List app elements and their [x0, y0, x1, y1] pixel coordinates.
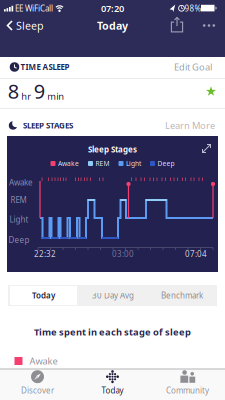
- button[interactable]: Sleep: [4, 17, 46, 33]
- button[interactable]: Share: [169, 16, 185, 34]
- staticText: Awake: [58, 159, 79, 168]
- staticText: Deep: [8, 235, 29, 245]
- button[interactable]: Today: [77, 368, 147, 398]
- staticText: 9: [34, 78, 45, 104]
- staticText: 07:04: [185, 249, 207, 259]
- staticText: Edit Goal: [174, 61, 212, 73]
- staticText: Awake: [29, 355, 57, 367]
- staticText: 8: [8, 78, 19, 104]
- staticText: Benchmark: [161, 290, 203, 301]
- staticText: Community: [166, 385, 209, 396]
- staticText: Light: [126, 159, 141, 168]
- staticText: REM: [10, 195, 26, 205]
- staticText: EE WiFiCall: [15, 3, 53, 14]
- staticText: 98%: [184, 3, 201, 14]
- staticText: REM: [95, 159, 109, 168]
- staticText: Sleep Stages: [88, 144, 137, 155]
- staticText: Light: [9, 214, 28, 225]
- staticText: Today: [101, 385, 123, 396]
- staticText: 03:00: [112, 249, 134, 259]
- staticText: 07:20: [101, 2, 124, 14]
- button[interactable]: Today: [10, 286, 77, 305]
- button[interactable]: Community: [152, 368, 222, 398]
- staticText: Discover: [21, 385, 54, 396]
- button[interactable]: Learn More: [165, 117, 215, 133]
- staticText: TIME ASLEEP: [20, 62, 69, 72]
- staticText: Today: [97, 18, 128, 33]
- staticText: Time spent in each stage of sleep: [34, 326, 191, 338]
- button[interactable]: More options: [200, 18, 218, 32]
- staticText: 30 Day Avg: [92, 290, 134, 301]
- staticText: Today: [32, 290, 55, 301]
- staticText: Deep: [157, 159, 174, 168]
- button[interactable]: Edit Goal: [171, 59, 215, 75]
- staticText: Sleep: [16, 18, 44, 33]
- staticText: 22:32: [34, 249, 56, 259]
- button[interactable]: Discover: [2, 368, 72, 398]
- staticText: Learn More: [165, 119, 215, 132]
- staticText: hr: [21, 90, 31, 102]
- staticText: Awake: [9, 177, 33, 188]
- button[interactable]: Benchmark: [152, 285, 212, 306]
- button[interactable]: Expand chart: [201, 143, 211, 153]
- button[interactable]: 30 Day Avg: [83, 285, 143, 306]
- staticText: min: [47, 90, 64, 102]
- staticText: SLEEP STAGES: [23, 120, 73, 131]
